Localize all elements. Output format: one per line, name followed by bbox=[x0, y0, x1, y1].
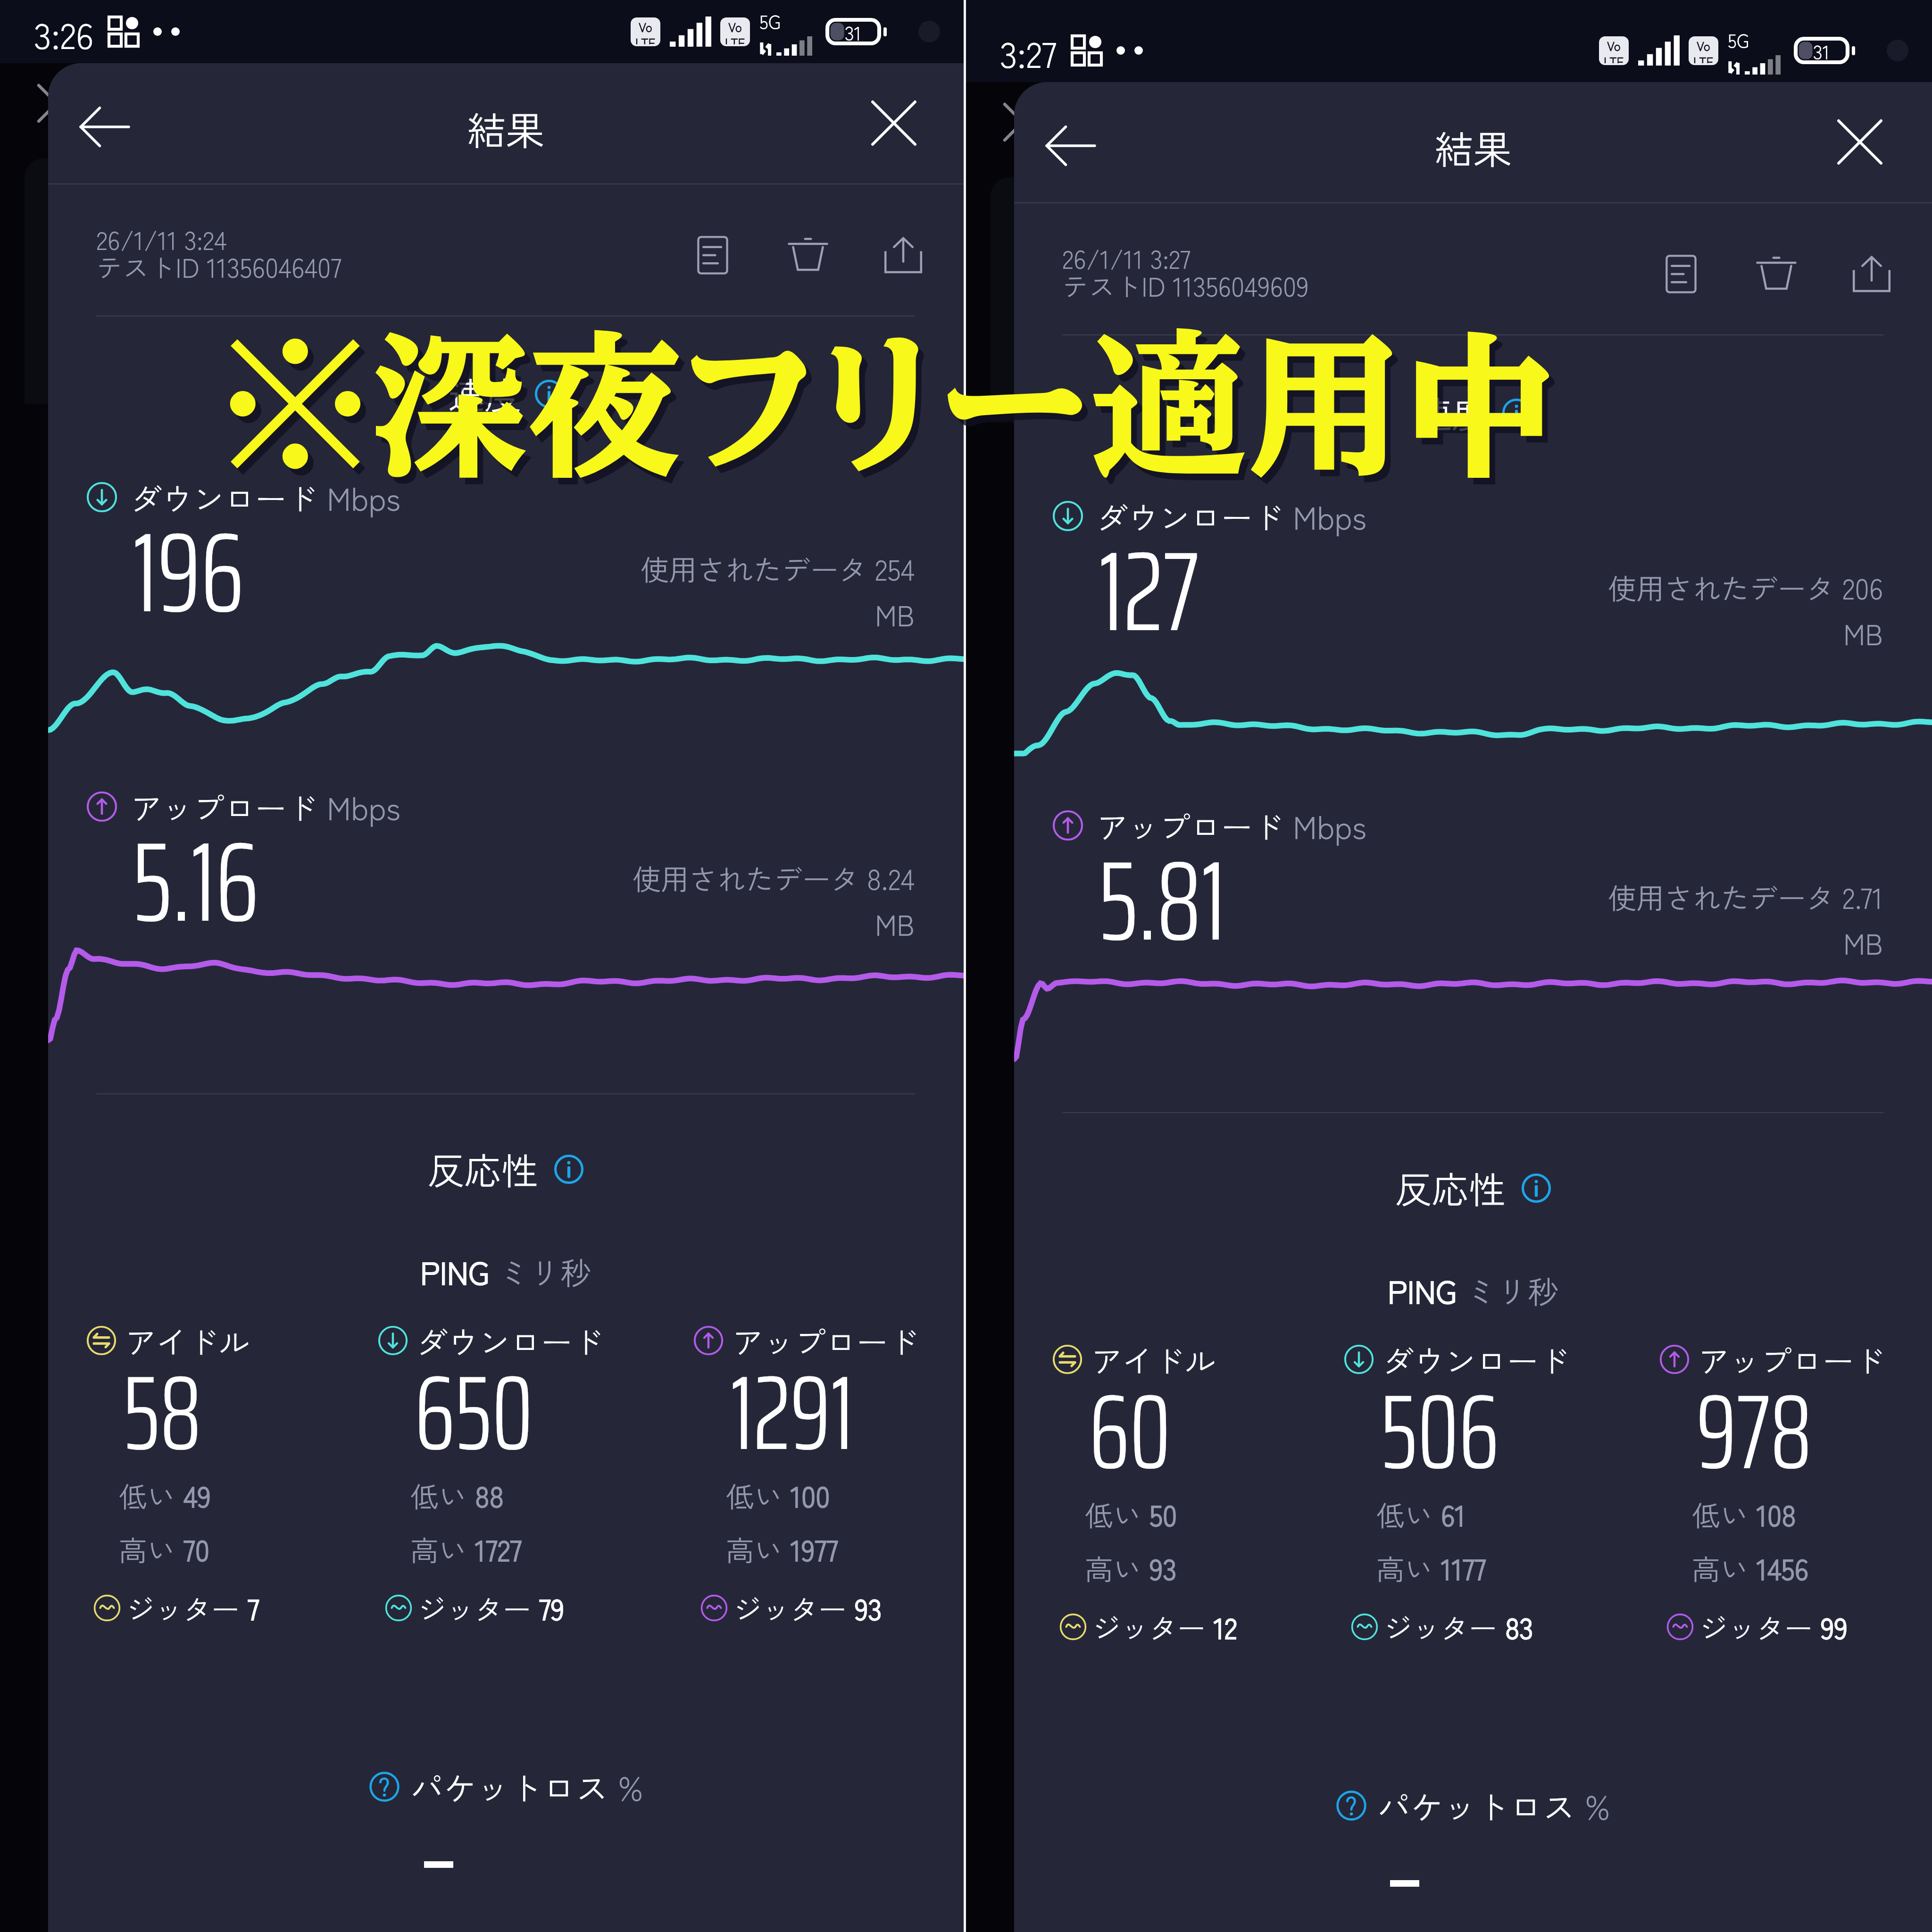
staticText: ジッター bbox=[1092, 1606, 1214, 1647]
staticText: 低い bbox=[410, 1474, 475, 1516]
staticText: 93 bbox=[1149, 1547, 1177, 1588]
staticText: ジッター bbox=[733, 1587, 855, 1628]
staticText: 反応性 bbox=[428, 1142, 539, 1196]
staticText: 60 bbox=[1089, 1349, 1171, 1514]
button[interactable]: 反応性について bbox=[1521, 1173, 1551, 1203]
staticText: Vo bbox=[639, 18, 652, 36]
staticText: Vo bbox=[1607, 37, 1621, 55]
staticText: 使用されたデータ 2.71 bbox=[1608, 876, 1883, 917]
staticText: 49 bbox=[183, 1474, 211, 1516]
staticText: ジッター bbox=[126, 1587, 248, 1628]
staticText: LTE bbox=[635, 33, 656, 44]
staticText: 1456 bbox=[1757, 1547, 1809, 1588]
staticText: ジッター bbox=[1384, 1606, 1505, 1647]
staticText: Mbps bbox=[1293, 493, 1367, 539]
staticText: 低い bbox=[1085, 1493, 1149, 1534]
staticText: 26/1/11 3:24 bbox=[96, 220, 227, 257]
staticText: PING bbox=[1388, 1267, 1466, 1313]
staticText: 高い bbox=[410, 1528, 475, 1569]
staticText: 結果 bbox=[467, 100, 545, 157]
staticText: Vo bbox=[1697, 37, 1710, 55]
staticText: 99 bbox=[1821, 1606, 1848, 1647]
staticText: 31 bbox=[1813, 37, 1830, 64]
staticText: 5.81 bbox=[1099, 813, 1226, 989]
staticText: 低い bbox=[726, 1474, 791, 1516]
staticText: 低い bbox=[119, 1474, 183, 1516]
staticText: 506 bbox=[1381, 1349, 1499, 1514]
staticText: ダウンロード bbox=[1382, 1337, 1569, 1382]
button[interactable]: Delete bbox=[787, 235, 829, 275]
staticText: LTE bbox=[725, 33, 745, 44]
staticText: 1177 bbox=[1441, 1547, 1486, 1588]
staticText: Mbps bbox=[1293, 803, 1367, 848]
staticText: 93 bbox=[855, 1587, 882, 1628]
button[interactable]: Back bbox=[79, 102, 129, 152]
button[interactable]: 速度について bbox=[534, 379, 564, 408]
staticText: 低い bbox=[1692, 1493, 1757, 1534]
button[interactable]: パケットロスについて bbox=[1336, 1790, 1367, 1821]
staticText: アイドル bbox=[1091, 1337, 1216, 1382]
staticText: 5.16 bbox=[133, 794, 259, 970]
staticText: 127 bbox=[1099, 503, 1199, 679]
staticText: パケットロス bbox=[1377, 1782, 1585, 1829]
staticText: 70 bbox=[183, 1528, 209, 1569]
staticText: 使用されたデータ 206 bbox=[1608, 566, 1883, 608]
staticText: 61 bbox=[1441, 1493, 1466, 1534]
button[interactable]: Details bbox=[1660, 254, 1702, 294]
button[interactable]: Share bbox=[882, 235, 924, 275]
staticText: 5G bbox=[759, 8, 781, 35]
staticText: 1291 bbox=[730, 1331, 854, 1495]
staticText: ジッター bbox=[1699, 1606, 1821, 1647]
staticText: アップロード bbox=[1698, 1337, 1885, 1382]
staticText: 低い bbox=[1376, 1493, 1441, 1534]
staticText: ミリ秒 bbox=[498, 1249, 591, 1294]
button[interactable]: Delete bbox=[1755, 254, 1798, 294]
staticText: ジッター bbox=[418, 1587, 539, 1628]
staticText: 31 bbox=[845, 18, 862, 45]
button[interactable]: 速度について bbox=[1502, 398, 1531, 427]
staticText: 83 bbox=[1505, 1606, 1533, 1647]
staticText: 58 bbox=[123, 1331, 201, 1495]
staticText: 26/1/11 3:27 bbox=[1062, 239, 1191, 276]
staticText: Vo bbox=[728, 18, 742, 36]
staticText: MB bbox=[1843, 612, 1883, 653]
staticText: 3:26 bbox=[34, 8, 94, 56]
staticText: 使用されたデータ 254 bbox=[641, 548, 915, 589]
button[interactable]: 反応性について bbox=[554, 1154, 584, 1184]
staticText: Mbps bbox=[327, 475, 401, 520]
staticText: ※深夜フリー適用中 bbox=[0, 333, 1859, 488]
staticText: 使用されたデータ 8.24 bbox=[633, 857, 915, 898]
staticText: 88 bbox=[475, 1474, 504, 1516]
staticText: PING bbox=[420, 1249, 498, 1294]
staticText: MB bbox=[1843, 922, 1883, 963]
staticText: MB bbox=[875, 903, 915, 944]
button[interactable]: Details bbox=[691, 235, 734, 275]
button[interactable]: Close bbox=[873, 102, 915, 144]
staticText: 高い bbox=[726, 1528, 791, 1569]
staticText: 108 bbox=[1757, 1493, 1796, 1534]
staticText: 速度 bbox=[448, 367, 522, 420]
button[interactable]: Share bbox=[1850, 254, 1893, 294]
button[interactable]: Back bbox=[1045, 121, 1095, 171]
staticText: % bbox=[1585, 1782, 1610, 1829]
staticText: 1727 bbox=[475, 1528, 522, 1569]
staticText: Mbps bbox=[327, 784, 401, 829]
staticText: 50 bbox=[1149, 1493, 1177, 1534]
staticText: 196 bbox=[133, 484, 244, 660]
staticText: 速度 bbox=[1416, 386, 1490, 439]
staticText: テストID 11356046407 bbox=[96, 247, 342, 285]
staticText: 反応性 bbox=[1395, 1161, 1506, 1215]
staticText: % bbox=[618, 1763, 643, 1810]
staticText: MB bbox=[875, 593, 915, 634]
staticText: LTE bbox=[1604, 52, 1624, 63]
staticText: 12 bbox=[1214, 1606, 1237, 1647]
staticText: 7 bbox=[248, 1587, 259, 1628]
staticText: 978 bbox=[1696, 1349, 1812, 1514]
staticText: アップロード bbox=[131, 784, 317, 829]
button[interactable]: Close bbox=[1839, 121, 1881, 163]
button[interactable]: パケットロスについて bbox=[369, 1771, 400, 1802]
staticText: 3:27 bbox=[1000, 26, 1057, 75]
staticText: ダウンロード bbox=[131, 475, 317, 520]
staticText: パケットロス bbox=[410, 1763, 618, 1810]
staticText: LTE bbox=[1693, 52, 1714, 63]
